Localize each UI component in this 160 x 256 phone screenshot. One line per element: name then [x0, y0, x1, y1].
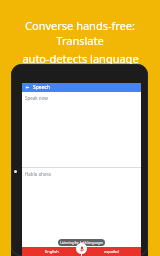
- button[interactable]: Speak now: [22, 92, 141, 167]
- staticText: Habla ahora: [25, 171, 51, 177]
- button[interactable]: Listening for both languages: [58, 239, 105, 246]
- staticText: Speak now: [25, 95, 48, 101]
- staticText: Listening for both languages: [60, 241, 104, 245]
- staticText: Speech: [33, 84, 51, 91]
- staticText: español: [104, 249, 119, 254]
- staticText: auto-detects language: [22, 51, 139, 66]
- staticText: Converse hands-free: Translate: [10, 18, 150, 48]
- button[interactable]: Microphone: [76, 243, 87, 254]
- button[interactable]: español: [82, 247, 141, 256]
- button[interactable]: Back: [25, 85, 30, 90]
- button[interactable]: Back: [22, 83, 141, 92]
- button[interactable]: Habla ahora: [22, 168, 141, 247]
- staticText: English: [45, 249, 59, 254]
- button[interactable]: English: [22, 247, 81, 256]
